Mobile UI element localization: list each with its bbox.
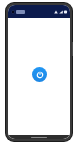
button[interactable]: Power	[32, 67, 47, 82]
